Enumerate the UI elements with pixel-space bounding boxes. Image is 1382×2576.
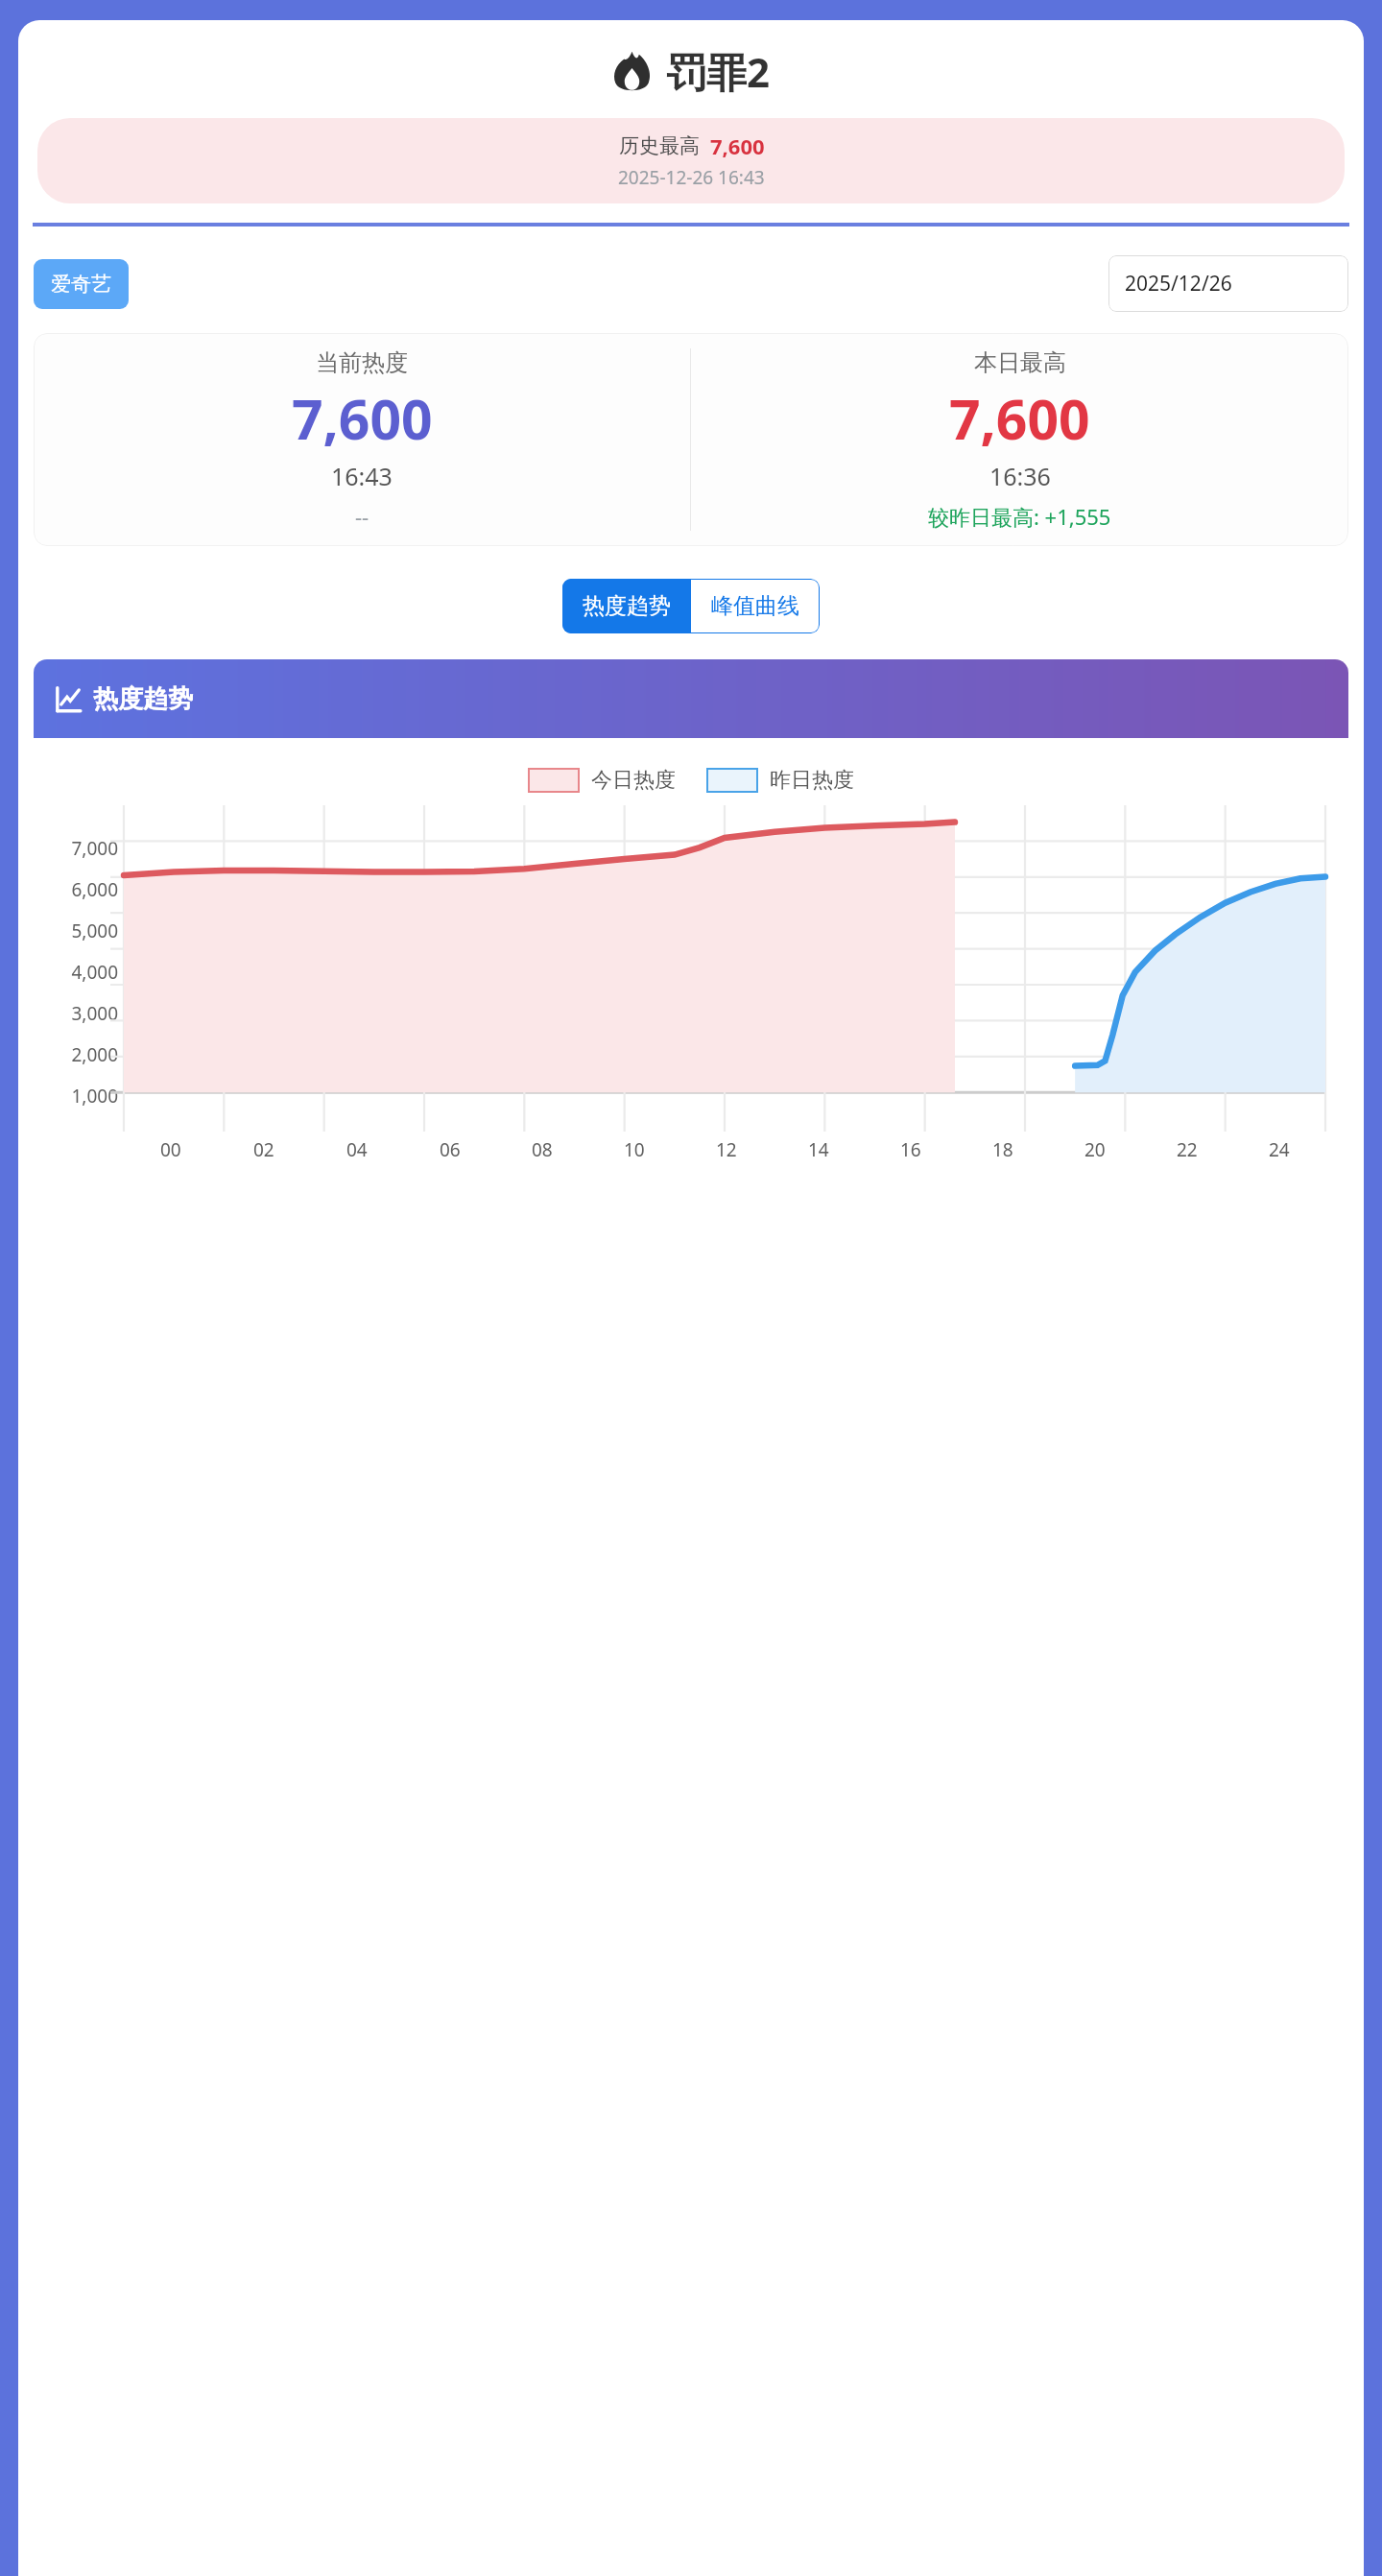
staticText: 6,000 [71,877,118,902]
staticText: 热度趋势 [93,683,193,715]
button[interactable]: 历史最高 [37,118,1345,203]
staticText: 18 [992,1137,1013,1162]
staticText: 峰值曲线 [711,592,799,620]
staticText: 5,000 [71,918,118,943]
staticText: 06 [440,1137,461,1162]
button[interactable]: 当前热度 [34,333,690,546]
button[interactable]: 本日最高 [691,333,1348,546]
staticText: 22 [1177,1137,1198,1162]
staticText: 热度趋势 [583,592,671,620]
staticText: 7,600 [292,381,433,456]
staticText: 16:43 [331,460,393,492]
staticText: 4,000 [71,960,118,985]
staticText: 爱奇艺 [51,272,111,297]
staticText: 1,000 [71,1084,118,1109]
button[interactable]: 热度趋势 [562,579,691,633]
staticText: 04 [346,1137,368,1162]
staticText: 2,000 [71,1042,118,1067]
staticText: 历史最高 [619,133,700,158]
staticText: 00 [160,1137,181,1162]
staticText: 7,000 [71,836,118,861]
staticText: 昨日热度 [770,767,854,794]
staticText: 2025/12/26 [1125,270,1232,298]
staticText: 12 [716,1137,737,1162]
staticText: 16 [900,1137,921,1162]
staticText: 7,600 [949,381,1090,456]
staticText: 24 [1269,1137,1290,1162]
staticText: -- [355,502,369,531]
staticText: 10 [624,1137,645,1162]
staticText: 16:36 [989,460,1051,492]
staticText: 2025-12-26 16:43 [618,165,765,190]
staticText: 当前热度 [316,348,408,377]
staticText: 08 [532,1137,553,1162]
staticText: 02 [253,1137,274,1162]
staticText: 罚罪2 [666,44,771,99]
button[interactable]: 2025/12/26 [1108,255,1348,312]
staticText: 7,600 [710,131,765,160]
staticText: 今日热度 [591,767,676,794]
button[interactable]: 爱奇艺 [34,259,129,309]
staticText: 20 [1084,1137,1106,1162]
staticText: 14 [808,1137,829,1162]
staticText: 3,000 [71,1001,118,1026]
staticText: 本日最高 [974,348,1066,377]
staticText: 较昨日最高: +1,555 [928,502,1111,531]
button[interactable]: 峰值曲线 [691,579,820,633]
